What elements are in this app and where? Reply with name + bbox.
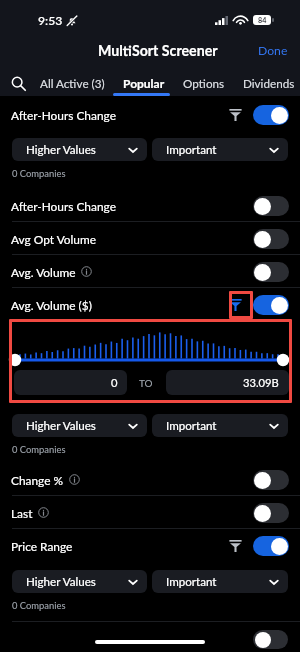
staticText: 0 Companies — [12, 600, 66, 611]
staticText: Important — [166, 575, 269, 589]
button[interactable]: Important — [152, 414, 288, 437]
staticText: 33.09B — [243, 376, 279, 389]
staticText: After-Hours Change — [11, 199, 116, 213]
staticText: Higher Values — [26, 143, 128, 157]
staticText: Done — [258, 43, 288, 58]
button[interactable]: Last — [0, 496, 300, 529]
staticText: Higher Values — [26, 575, 128, 589]
button[interactable]: Filter — [229, 108, 242, 121]
staticText: After-Hours Change — [11, 108, 116, 122]
button[interactable]: Higher Values — [12, 570, 147, 593]
button[interactable]: Toggle — [253, 503, 289, 523]
button[interactable]: Toggle — [253, 295, 289, 315]
staticText: 84 — [258, 16, 267, 25]
button[interactable]: Filter — [229, 539, 242, 552]
button[interactable]: Avg. Volume ($) — [0, 288, 300, 321]
staticText: Avg. Volume — [11, 265, 76, 279]
button[interactable]: After-Hours Change — [0, 189, 300, 222]
staticText: Price Range — [11, 539, 73, 553]
button[interactable]: Toggle — [253, 262, 289, 282]
staticText: Important — [166, 143, 269, 157]
staticText: All Active (3) — [40, 76, 105, 90]
button[interactable]: After-Hours Change — [0, 98, 300, 131]
staticText: Avg Opt Volume — [11, 232, 97, 246]
staticText: 0 — [111, 376, 118, 389]
button[interactable]: Important — [152, 138, 288, 161]
staticText: 0 Companies — [12, 444, 66, 455]
button[interactable]: Avg Opt Volume — [0, 222, 300, 255]
button[interactable]: 0 — [14, 370, 127, 395]
button[interactable]: Change % — [0, 463, 300, 496]
button[interactable]: Dividends — [236, 70, 300, 96]
button[interactable]: All Active (3) — [33, 70, 112, 96]
button[interactable]: Toggle — [253, 470, 289, 490]
button[interactable]: Higher Values — [12, 138, 147, 161]
button[interactable]: Done — [246, 43, 300, 58]
staticText: Avg. Volume ($) — [11, 298, 92, 312]
button[interactable]: Toggle — [253, 105, 289, 125]
staticText: Popular — [123, 76, 165, 90]
staticText: MultiSort Screener — [98, 42, 218, 59]
staticText: Dividends — [243, 76, 295, 90]
button[interactable]: Options — [176, 70, 232, 96]
staticText: Change % — [11, 473, 64, 487]
button[interactable]: Search — [0, 70, 33, 96]
button[interactable]: Important — [152, 570, 288, 593]
staticText: 0 Companies — [12, 168, 66, 179]
staticText: Higher Values — [26, 419, 128, 433]
button[interactable]: Avg. Volume — [0, 255, 300, 288]
button[interactable]: Popular — [116, 70, 172, 96]
button[interactable]: Toggle — [253, 196, 289, 216]
button[interactable]: Filter — [229, 298, 242, 311]
staticText: 9:53 — [38, 13, 63, 28]
button[interactable]: Price Range — [0, 529, 300, 562]
staticText: Important — [166, 419, 269, 433]
button[interactable]: Higher Values — [12, 414, 147, 437]
staticText: TO — [139, 377, 153, 389]
staticText: Options — [183, 76, 225, 90]
button[interactable]: 33.09B — [166, 370, 289, 395]
button[interactable]: Toggle — [253, 229, 289, 249]
staticText: Last — [11, 506, 33, 520]
button[interactable]: Toggle — [253, 536, 289, 556]
